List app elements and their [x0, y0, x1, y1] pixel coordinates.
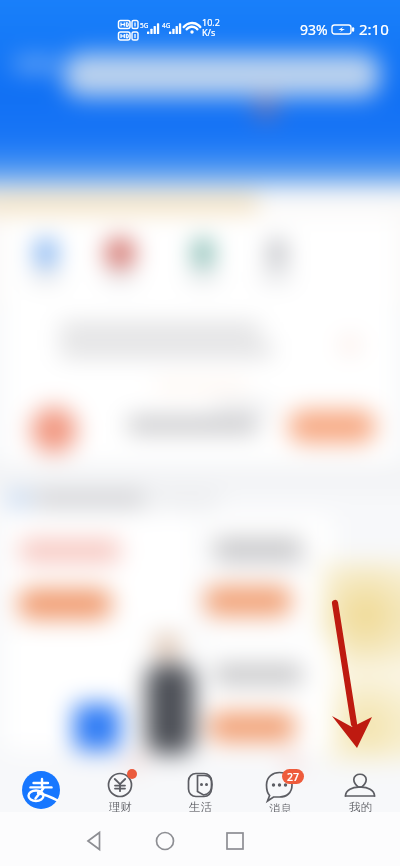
staticText: 生活 — [189, 800, 212, 812]
button[interactable]: 生活 — [160, 752, 240, 812]
button[interactable]: 首页 — [0, 752, 80, 812]
staticText: 5G — [140, 21, 149, 30]
button[interactable]: 27 — [240, 752, 320, 812]
staticText: 理财 — [109, 800, 132, 812]
staticText: 消息 — [269, 802, 292, 812]
button[interactable]: 我的 — [320, 752, 400, 812]
staticText: 2:10 — [359, 19, 389, 39]
staticText: 我的 — [349, 800, 372, 812]
staticText: 93% — [300, 20, 328, 39]
staticText: 4G — [162, 21, 171, 30]
button[interactable]: 理财 — [80, 752, 160, 812]
staticText: 27 — [287, 770, 300, 784]
staticText: 10.2 K/s — [202, 16, 220, 39]
other: 首页 — [18, 767, 64, 813]
